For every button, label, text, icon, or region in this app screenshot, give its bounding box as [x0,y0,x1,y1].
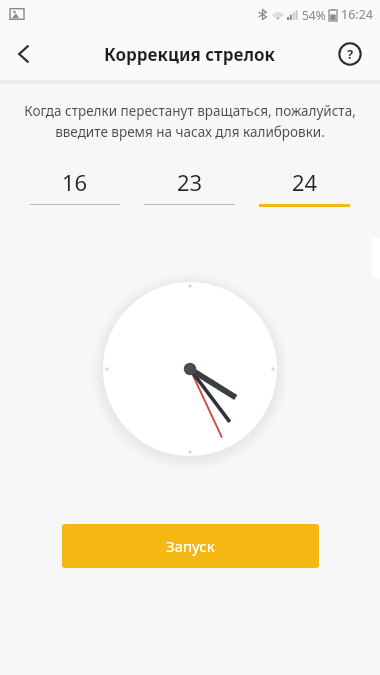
button[interactable]: Help [328,32,372,76]
button[interactable]: Запуск [62,524,319,568]
staticText: Запуск [166,536,215,556]
button[interactable]: 24 [259,167,350,207]
staticText: ? [347,45,354,63]
staticText: 54% [302,7,326,23]
staticText: 16:24 [341,6,373,23]
staticText: 16 [62,167,88,197]
staticText: 23 [177,167,203,197]
staticText: Когда стрелки перестанут вращаться, пожа… [10,102,370,141]
button[interactable]: 16 [30,167,120,205]
staticText: Коррекция стрелок [104,43,276,66]
button[interactable]: Back [0,30,48,78]
staticText: 24 [292,167,318,197]
button[interactable]: 23 [144,167,235,205]
